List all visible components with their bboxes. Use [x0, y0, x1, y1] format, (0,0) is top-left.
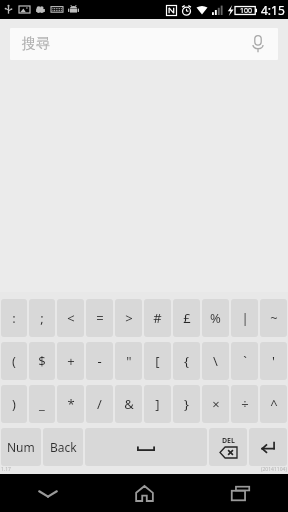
- staticText: +: [67, 352, 75, 370]
- staticText: ~: [270, 309, 278, 327]
- button[interactable]: Recent apps: [192, 474, 288, 512]
- button[interactable]: `: [231, 342, 258, 380]
- button[interactable]: Home: [96, 474, 192, 512]
- button[interactable]: Num: [1, 428, 41, 466]
- staticText: -: [97, 352, 102, 370]
- staticText: ': [272, 352, 275, 370]
- button[interactable]: ;: [29, 299, 55, 337]
- button[interactable]: |: [231, 299, 258, 337]
- staticText: |: [241, 309, 249, 327]
- staticText: %: [210, 309, 221, 327]
- button[interactable]: ): [1, 385, 27, 423]
- staticText: 1.17: [1, 466, 11, 473]
- button[interactable]: *: [57, 385, 84, 423]
- button[interactable]: ÷: [231, 385, 258, 423]
- staticText: £: [183, 309, 191, 327]
- staticText: 搜尋: [22, 35, 50, 53]
- button[interactable]: ~: [260, 299, 287, 337]
- button[interactable]: Hide keyboard: [0, 474, 96, 512]
- button[interactable]: (: [1, 342, 27, 380]
- button[interactable]: +: [57, 342, 84, 380]
- staticText: {: [184, 352, 189, 370]
- button[interactable]: %: [202, 299, 229, 337]
- staticText: =: [96, 309, 104, 327]
- staticText: (20141104): [261, 466, 287, 473]
- staticText: 4:15: [261, 2, 285, 18]
- staticText: Back: [50, 439, 77, 455]
- staticText: /: [97, 395, 102, 413]
- staticText: ": [126, 352, 132, 370]
- staticText: ]: [155, 395, 160, 413]
- staticText: &: [124, 395, 134, 413]
- button[interactable]: =: [86, 299, 113, 337]
- staticText: DEL: [222, 436, 235, 446]
- staticText: ^: [270, 395, 278, 413]
- staticText: ÷: [241, 395, 249, 413]
- button[interactable]: #: [144, 299, 171, 337]
- staticText: ): [12, 395, 16, 413]
- button[interactable]: Space: [85, 428, 207, 466]
- button[interactable]: Delete: [209, 428, 247, 466]
- button[interactable]: ^: [260, 385, 287, 423]
- button[interactable]: $: [29, 342, 55, 380]
- button[interactable]: ×: [202, 385, 229, 423]
- staticText: *: [67, 395, 75, 413]
- button[interactable]: ": [115, 342, 142, 380]
- staticText: :: [12, 309, 16, 327]
- staticText: _: [39, 395, 45, 413]
- button[interactable]: Back: [43, 428, 83, 466]
- staticText: 100: [240, 6, 253, 16]
- button[interactable]: :: [1, 299, 27, 337]
- staticText: #: [153, 309, 162, 327]
- button[interactable]: }: [173, 385, 200, 423]
- button[interactable]: &: [115, 385, 142, 423]
- staticText: >: [125, 309, 133, 327]
- button[interactable]: [: [144, 342, 171, 380]
- button[interactable]: >: [115, 299, 142, 337]
- button[interactable]: _: [29, 385, 55, 423]
- button[interactable]: \: [202, 342, 229, 380]
- staticText: ;: [40, 309, 44, 327]
- staticText: [: [155, 352, 160, 370]
- staticText: (: [12, 352, 16, 370]
- button[interactable]: Enter: [249, 428, 287, 466]
- button[interactable]: {: [173, 342, 200, 380]
- staticText: Num: [7, 439, 35, 455]
- button[interactable]: <: [57, 299, 84, 337]
- button[interactable]: 搜尋: [10, 28, 278, 60]
- staticText: `: [243, 352, 247, 370]
- staticText: <: [67, 309, 75, 327]
- staticText: \: [213, 352, 218, 370]
- button[interactable]: ': [260, 342, 287, 380]
- button[interactable]: /: [86, 385, 113, 423]
- button[interactable]: Voice search: [246, 32, 270, 56]
- staticText: $: [38, 352, 46, 370]
- button[interactable]: -: [86, 342, 113, 380]
- button[interactable]: ]: [144, 385, 171, 423]
- staticText: ×: [212, 395, 220, 413]
- button[interactable]: £: [173, 299, 200, 337]
- staticText: }: [184, 395, 189, 413]
